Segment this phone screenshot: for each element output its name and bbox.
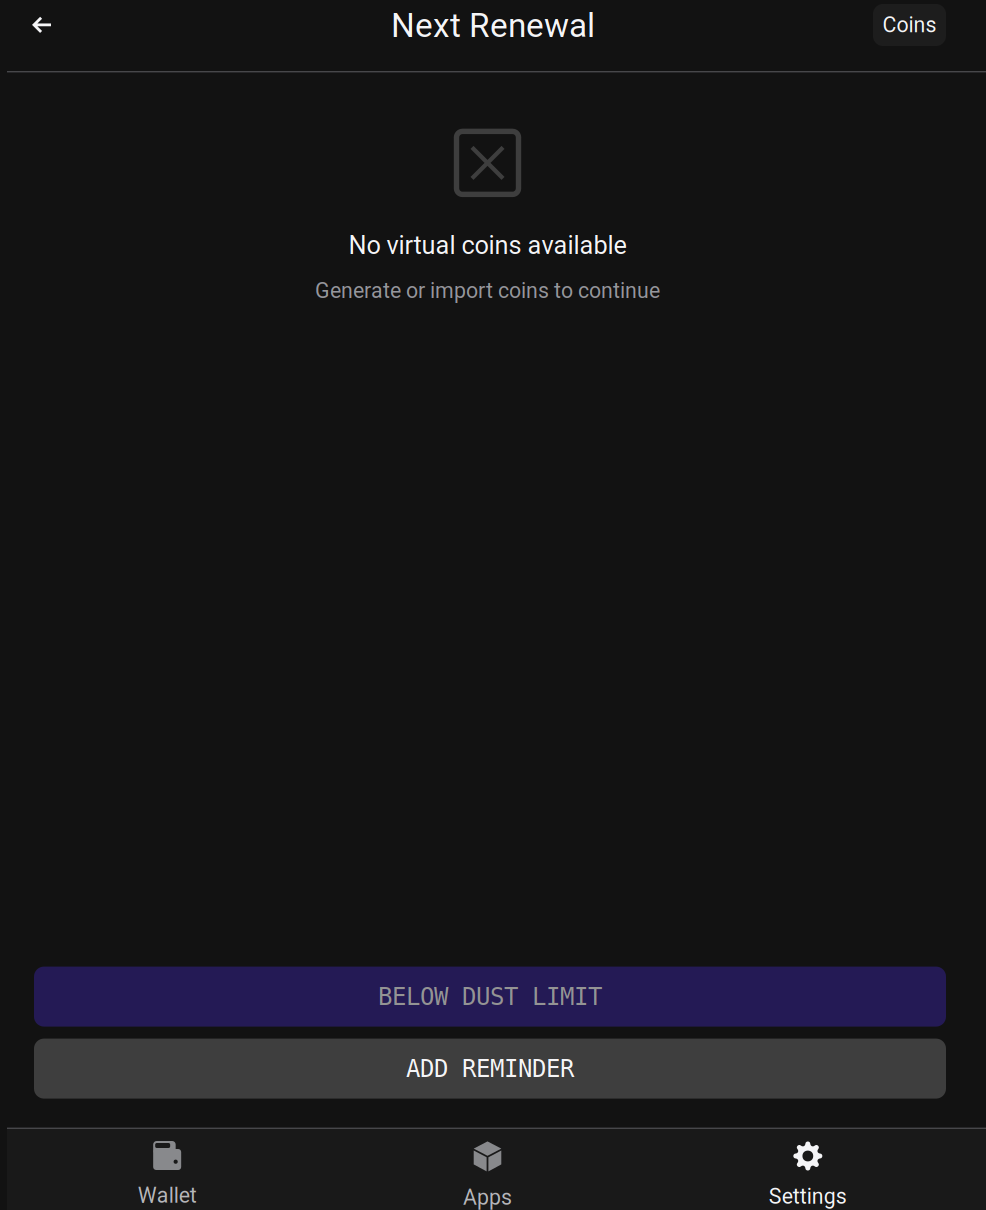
staticText: ADD REMINDER <box>406 1055 574 1082</box>
staticText: Wallet <box>138 1183 197 1208</box>
staticText: No virtual coins available <box>348 230 626 260</box>
button[interactable]: BELOW DUST LIMIT <box>34 967 946 1027</box>
staticText: Coins <box>882 12 936 37</box>
button[interactable]: Coins <box>873 4 946 46</box>
button[interactable]: ADD REMINDER <box>34 1039 946 1099</box>
button[interactable]: Settings <box>648 1129 968 1210</box>
staticText: Next Renewal <box>391 6 595 45</box>
button[interactable]: Wallet <box>7 1129 327 1210</box>
button[interactable]: Back <box>0 1 85 49</box>
staticText: Generate or import coins to continue <box>315 278 660 303</box>
staticText: Apps <box>463 1185 512 1210</box>
staticText: BELOW DUST LIMIT <box>378 983 602 1010</box>
staticText: Settings <box>769 1184 847 1209</box>
button[interactable]: Apps <box>327 1129 648 1210</box>
